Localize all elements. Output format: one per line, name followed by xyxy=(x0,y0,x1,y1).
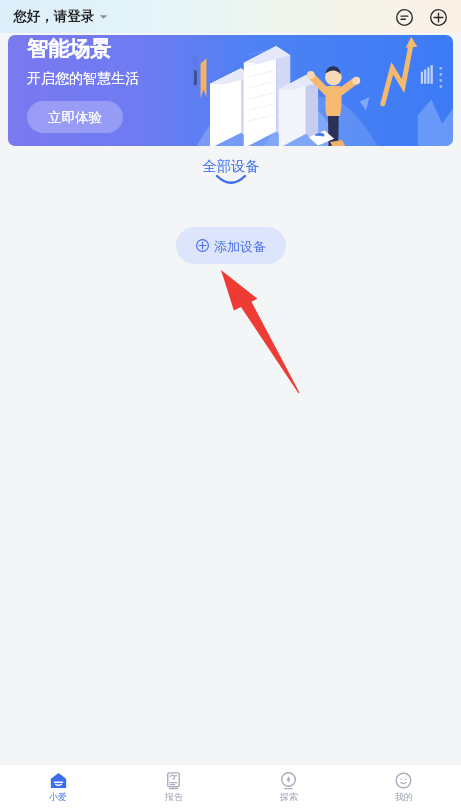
staticText: 报告 xyxy=(165,791,183,802)
staticText: 添加设备 xyxy=(214,238,266,254)
staticText: 全部设备 xyxy=(202,157,260,175)
staticText: 立即体验 xyxy=(48,109,102,126)
button[interactable]: 我的 xyxy=(346,765,461,809)
staticText: 小爱 xyxy=(49,791,67,802)
button[interactable]: 报告 xyxy=(116,765,231,809)
button[interactable]: 小爱 xyxy=(0,765,116,809)
button[interactable]: 智能场景 xyxy=(8,35,453,146)
button[interactable]: 全部设备 xyxy=(188,155,274,186)
staticText: 探索 xyxy=(280,791,298,802)
button[interactable]: 立即体验 xyxy=(27,101,123,133)
button[interactable]: Messages xyxy=(391,4,417,30)
button[interactable]: 添加设备 xyxy=(176,227,286,264)
button[interactable]: 您好，请登录 xyxy=(13,8,108,25)
staticText: 您好，请登录 xyxy=(13,8,94,25)
button[interactable]: Add xyxy=(425,4,451,30)
staticText: 智能场景 xyxy=(27,36,111,62)
button[interactable]: 探索 xyxy=(231,765,346,809)
staticText: 我的 xyxy=(395,791,413,802)
staticText: 开启您的智慧生活 xyxy=(27,70,139,88)
